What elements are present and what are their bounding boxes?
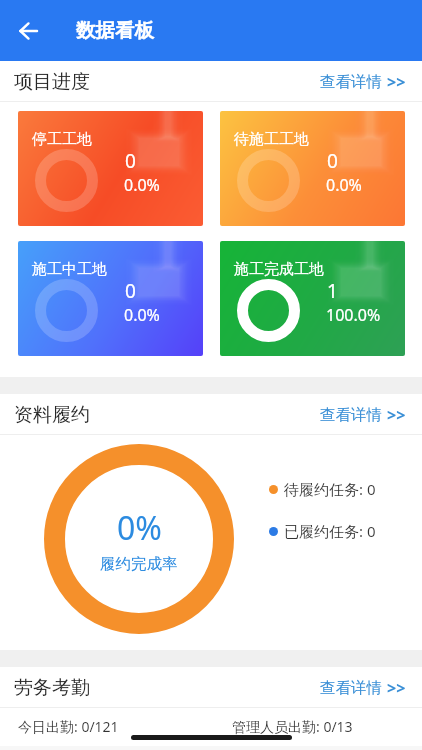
staticText: 0.0% [326, 174, 362, 196]
staticText: 数据看板 [76, 18, 154, 43]
staticText: 待履约任务: 0 [284, 479, 376, 499]
button[interactable]: 待施工工地 [220, 111, 405, 226]
button[interactable]: 查看详情 [320, 404, 406, 426]
staticText: 0.0% [124, 174, 160, 196]
staticText: 今日出勤: 0/121 [18, 717, 119, 736]
staticText: 施工完成工地 [234, 260, 324, 279]
staticText: 查看详情 [320, 405, 382, 425]
button[interactable]: 施工完成工地 [220, 241, 405, 356]
button[interactable]: 查看详情 [320, 677, 406, 699]
button[interactable]: 施工中工地 [18, 241, 203, 356]
staticText: 项目进度 [14, 70, 90, 94]
staticText: 0.0% [124, 304, 160, 326]
staticText: 待施工工地 [234, 130, 309, 149]
staticText: >> [387, 404, 406, 426]
staticText: 查看详情 [320, 72, 382, 92]
staticText: 查看详情 [320, 678, 382, 698]
staticText: 施工中工地 [32, 260, 107, 279]
staticText: 劳务考勤 [14, 676, 90, 700]
staticText: 100.0% [326, 304, 381, 326]
staticText: 管理人员出勤: 0/13 [232, 717, 353, 736]
staticText: 1 [327, 278, 338, 304]
staticText: 0% [117, 506, 162, 550]
staticText: 0 [125, 148, 136, 174]
button[interactable]: 停工工地 [18, 111, 203, 226]
staticText: 已履约任务: 0 [284, 521, 376, 541]
button[interactable]: 查看详情 [320, 71, 406, 93]
staticText: >> [387, 677, 406, 699]
staticText: 资料履约 [14, 403, 90, 427]
staticText: 0 [327, 148, 338, 174]
staticText: 停工工地 [32, 130, 92, 149]
staticText: >> [387, 71, 406, 93]
button[interactable]: Back [6, 9, 50, 53]
staticText: 履约完成率 [100, 554, 178, 574]
staticText: 0 [125, 278, 136, 304]
